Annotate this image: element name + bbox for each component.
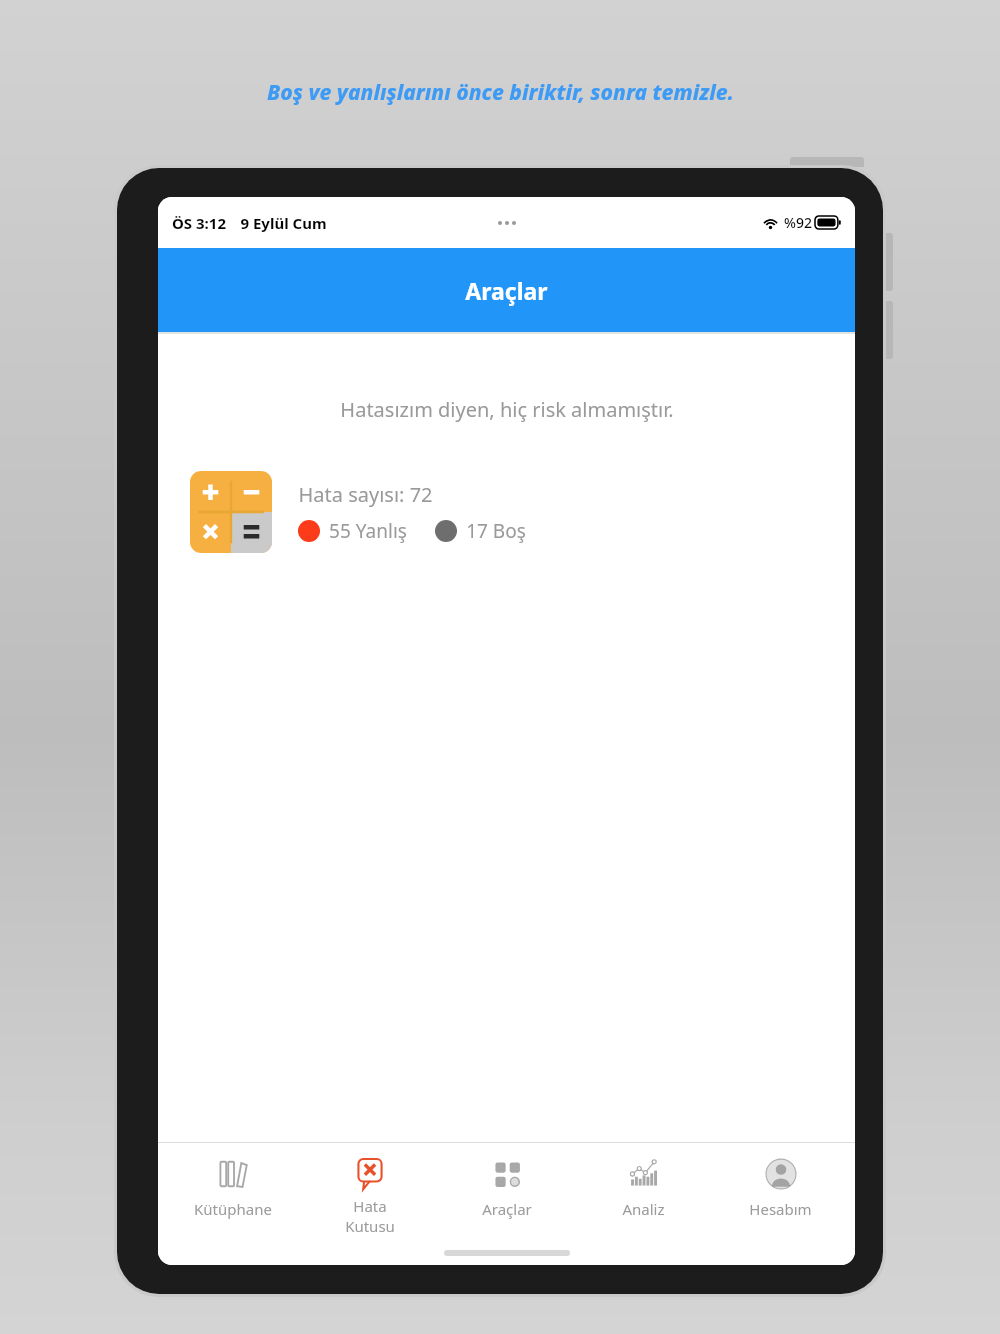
staticText: 9 Eylül Cum xyxy=(240,213,327,233)
button[interactable]: Kütüphane xyxy=(170,1157,295,1219)
staticText: Araçlar xyxy=(482,1199,532,1219)
staticText: Araçlar xyxy=(465,275,548,306)
staticText: Hata xyxy=(353,1196,387,1216)
staticText: Kutusu xyxy=(345,1216,395,1236)
staticText: Hesabım xyxy=(749,1199,812,1219)
button[interactable]: Hesap makinesi xyxy=(190,471,272,553)
button[interactable]: Araçlar xyxy=(444,1157,569,1219)
staticText: ÖS 3:12 xyxy=(172,213,226,233)
button[interactable]: Hata xyxy=(307,1157,432,1236)
staticText: Analiz xyxy=(622,1199,665,1219)
staticText: Boş ve yanlışlarını önce biriktir, sonra… xyxy=(267,78,734,107)
button[interactable]: Analiz xyxy=(581,1157,706,1219)
staticText: Hata sayısı: 72 xyxy=(298,481,433,508)
staticText: Kütüphane xyxy=(194,1199,272,1219)
button[interactable]: Hesabım xyxy=(718,1157,843,1219)
staticText: %92 xyxy=(784,213,812,232)
staticText: 17 Boş xyxy=(466,518,526,544)
staticText: 55 Yanlış xyxy=(329,518,407,544)
staticText: Hatasızım diyen, hiç risk almamıştır. xyxy=(340,396,674,423)
